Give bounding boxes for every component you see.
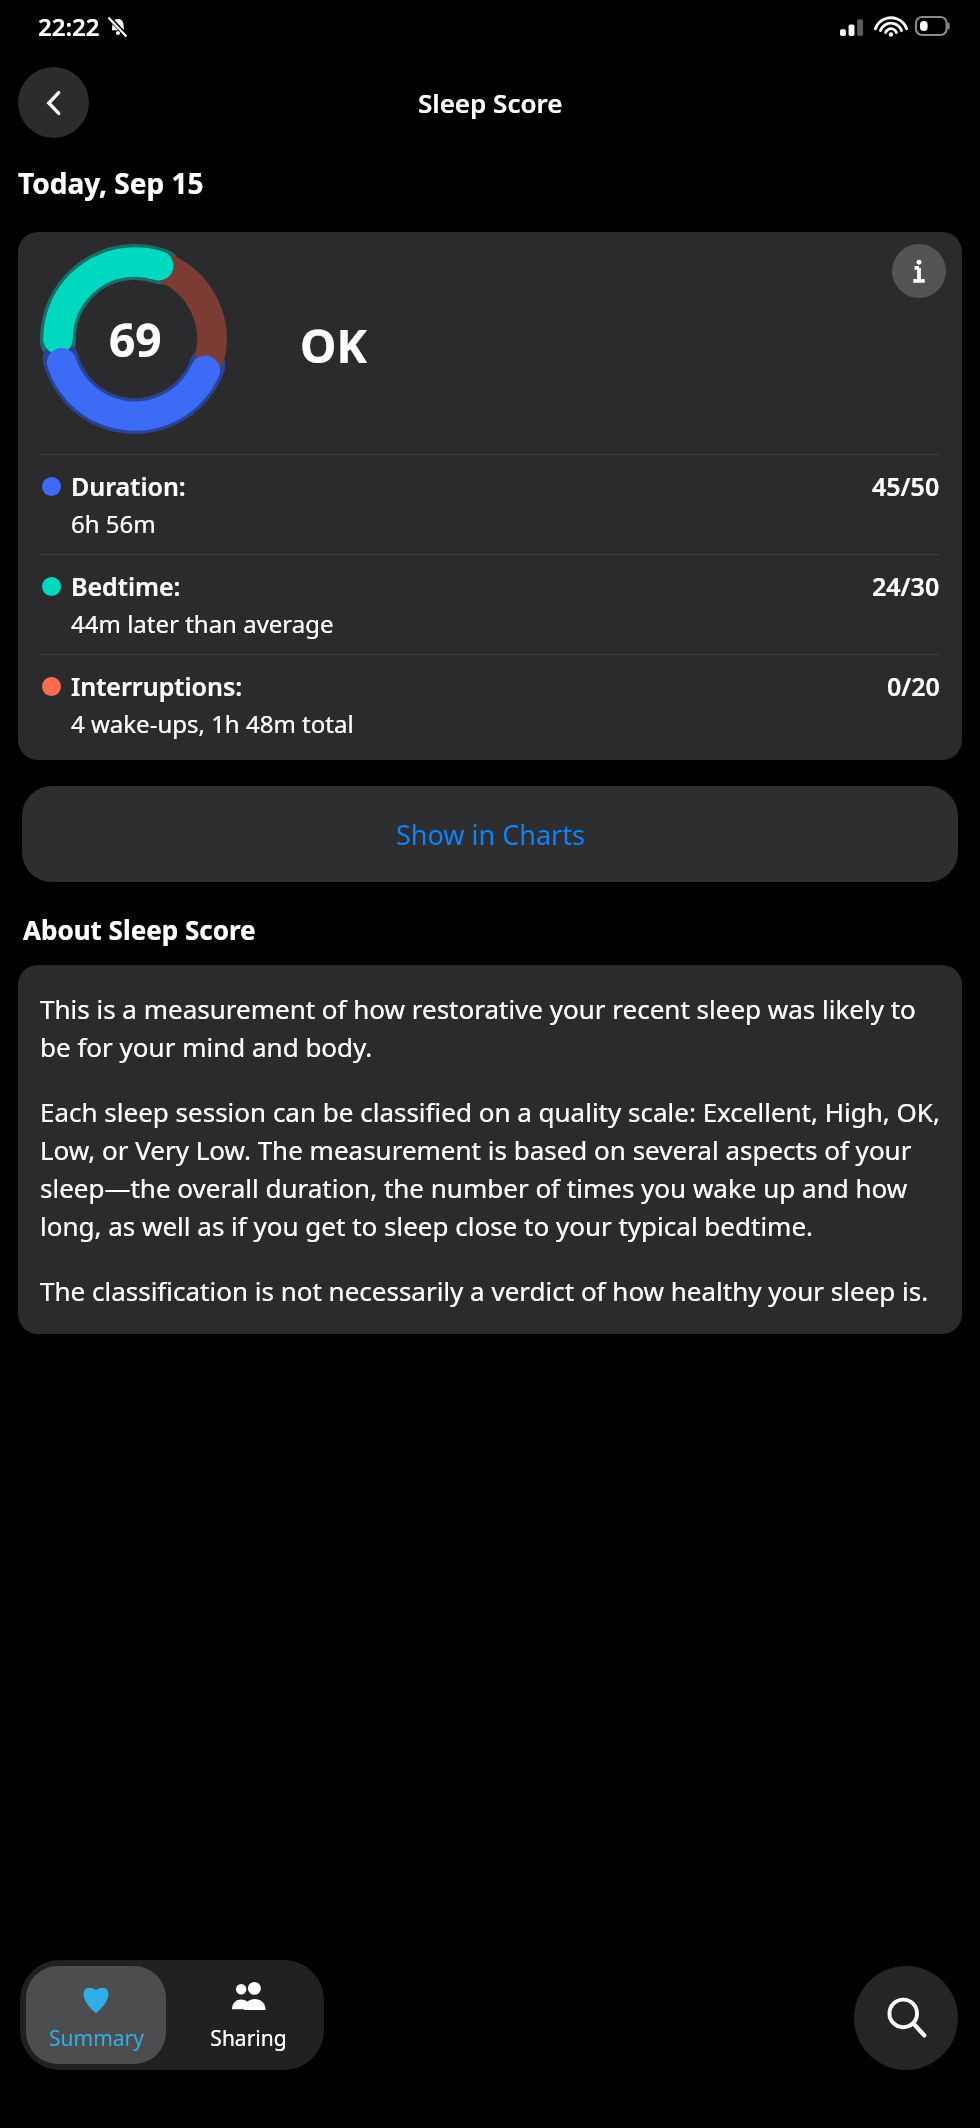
staticText: About Sleep Score <box>23 912 256 947</box>
staticText: Sleep Score <box>418 85 563 120</box>
button[interactable]: Show in Charts <box>22 786 958 882</box>
staticText: Interruptions: <box>71 669 243 703</box>
button[interactable]: Info <box>892 244 946 298</box>
staticText: Duration: <box>71 469 186 503</box>
staticText: OK <box>300 314 367 377</box>
staticText: 45/50 <box>872 469 940 503</box>
staticText: 0/20 <box>887 669 940 703</box>
staticText: 24/30 <box>872 569 940 603</box>
button[interactable]: Bedtime: <box>18 555 962 654</box>
staticText: Bedtime: <box>71 569 181 603</box>
staticText: Show in Charts <box>396 816 585 853</box>
staticText: 6h 56m <box>71 507 156 540</box>
button[interactable]: Interruptions: <box>18 655 962 754</box>
staticText: Each sleep session can be classified on … <box>40 1094 940 1243</box>
staticText: Sharing <box>210 2024 287 2052</box>
staticText: 4 wake-ups, 1h 48m total <box>71 707 354 740</box>
staticText: 22:22 <box>38 10 100 43</box>
button[interactable]: Summary <box>26 1966 166 2064</box>
button[interactable]: Search <box>854 1966 958 2070</box>
button[interactable]: Sharing <box>178 1966 318 2064</box>
button[interactable]: Duration: <box>18 455 962 554</box>
staticText: This is a measurement of how restorative… <box>40 991 940 1064</box>
staticText: Today, Sep 15 <box>18 164 204 202</box>
staticText: Summary <box>49 2024 144 2052</box>
staticText: 44m later than average <box>71 607 334 640</box>
staticText: 69 <box>109 308 162 371</box>
button[interactable]: Back <box>18 67 89 138</box>
staticText: The classification is not necessarily a … <box>40 1273 929 1308</box>
